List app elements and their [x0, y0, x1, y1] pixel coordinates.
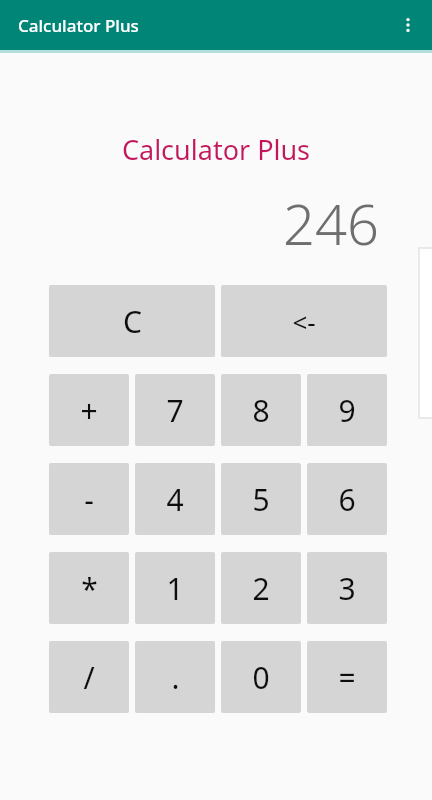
button[interactable]: <- [221, 285, 387, 357]
button[interactable]: 3 [307, 552, 387, 624]
button[interactable]: 7 [135, 374, 215, 446]
button[interactable]: / [49, 641, 129, 713]
button[interactable]: 1 [135, 552, 215, 624]
staticText: 4 [166, 479, 184, 520]
staticText: 0 [252, 657, 270, 698]
button[interactable]: 6 [307, 463, 387, 535]
staticText: 9 [338, 390, 356, 431]
button[interactable]: 5 [221, 463, 301, 535]
staticText: . [171, 657, 180, 698]
staticText: 5 [252, 479, 270, 520]
button[interactable]: * [49, 552, 129, 624]
button[interactable]: = [307, 641, 387, 713]
button[interactable]: 4 [135, 463, 215, 535]
staticText: C [123, 301, 142, 342]
staticText: 6 [338, 479, 356, 520]
staticText: / [83, 657, 95, 698]
staticText: * [81, 568, 98, 609]
staticText: Calculator Plus [0, 131, 432, 168]
button[interactable]: 2 [221, 552, 301, 624]
staticText: 1 [166, 568, 184, 609]
staticText: = [338, 657, 356, 698]
staticText: - [84, 479, 94, 520]
button[interactable]: - [49, 463, 129, 535]
button[interactable]: . [135, 641, 215, 713]
button[interactable]: 0 [221, 641, 301, 713]
button[interactable]: 9 [307, 374, 387, 446]
staticText: 7 [166, 390, 184, 431]
staticText: + [80, 390, 98, 431]
staticText: 3 [338, 568, 356, 609]
button[interactable]: More options [388, 5, 428, 45]
button[interactable]: 8 [221, 374, 301, 446]
button[interactable]: C [49, 285, 215, 357]
staticText: 2 [252, 568, 270, 609]
staticText: 8 [252, 390, 270, 431]
button[interactable]: + [49, 374, 129, 446]
staticText: <- [292, 304, 316, 339]
staticText: 246 [0, 185, 379, 261]
staticText: Calculator Plus [18, 14, 139, 37]
